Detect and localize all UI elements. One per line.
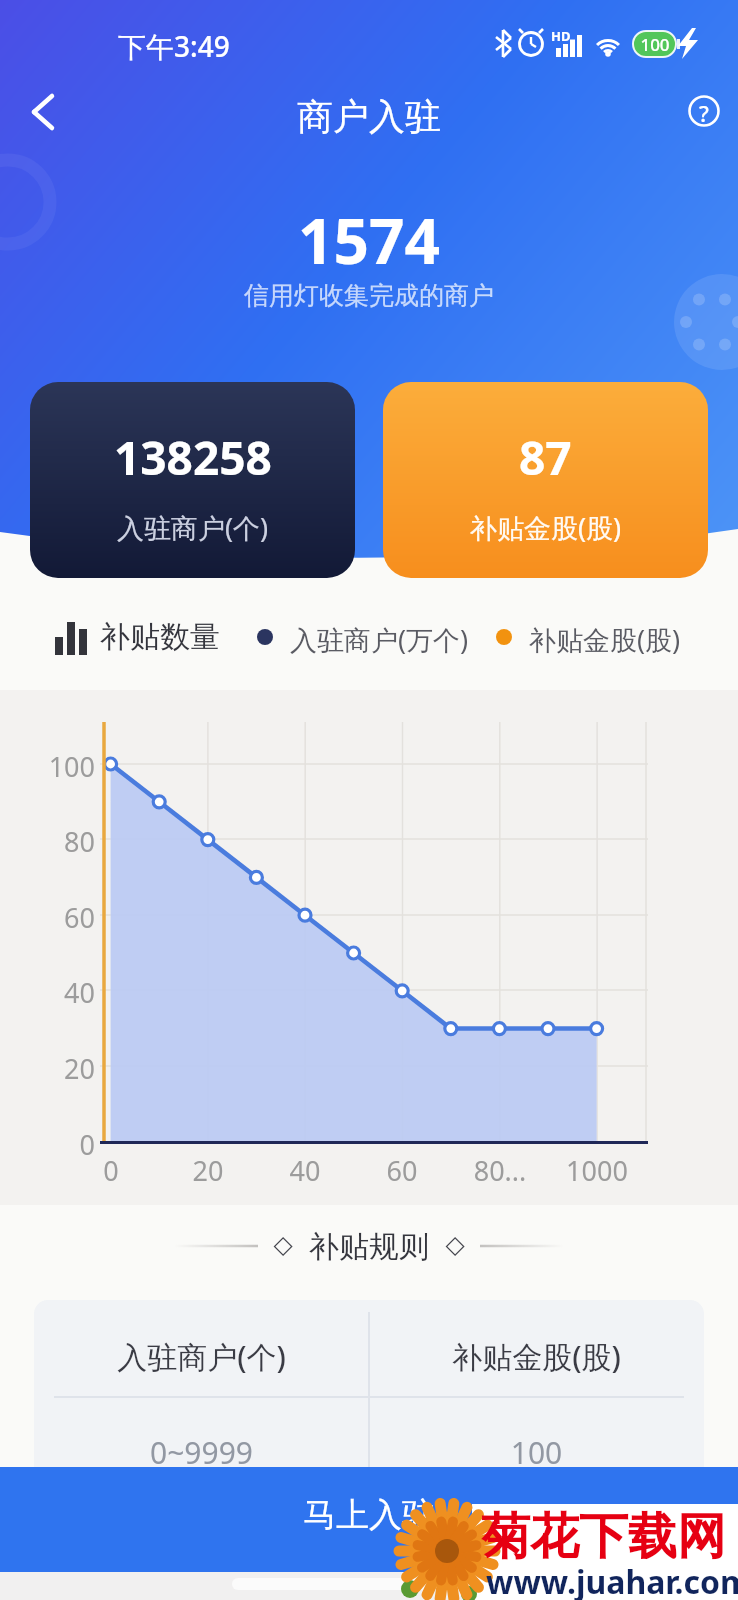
- staticText: 1574: [0, 198, 738, 282]
- staticText: 40: [35, 974, 95, 1011]
- staticText: www.juahar.com: [486, 1560, 738, 1600]
- staticText: 60: [35, 899, 95, 936]
- staticText: 100: [636, 33, 674, 56]
- button[interactable]: 马上入驻: [0, 1467, 738, 1572]
- staticText: 补贴金股(股): [369, 1336, 704, 1377]
- staticText: 商户入驻: [0, 94, 738, 139]
- staticText: 入驻商户(个): [34, 1336, 369, 1377]
- staticText: 补贴规则: [300, 1228, 438, 1266]
- button[interactable]: [680, 87, 728, 135]
- staticText: 40: [265, 1152, 345, 1189]
- staticText: 20: [35, 1050, 95, 1087]
- staticText: 0: [35, 1126, 95, 1163]
- staticText: 80...: [460, 1152, 540, 1189]
- staticText: 入驻商户(个): [117, 509, 269, 546]
- staticText: 补贴数量: [100, 618, 220, 656]
- staticText: 100: [369, 1432, 704, 1473]
- staticText: HD: [551, 27, 571, 45]
- staticText: ◇: [442, 1230, 468, 1259]
- staticText: 菊花下载网: [481, 1506, 726, 1568]
- staticText: 87: [519, 426, 572, 489]
- staticText: 0: [71, 1152, 151, 1189]
- staticText: 入驻商户(万个): [290, 621, 469, 658]
- button[interactable]: 87: [383, 382, 708, 578]
- staticText: 下午3:49: [118, 27, 230, 65]
- button[interactable]: [18, 88, 68, 136]
- staticText: 马上入驻: [303, 1494, 435, 1536]
- staticText: 20: [168, 1152, 248, 1189]
- staticText: 补贴金股(股): [529, 621, 681, 658]
- staticText: 1000: [557, 1152, 637, 1189]
- staticText: 100: [35, 748, 95, 785]
- staticText: ◇: [270, 1230, 296, 1259]
- button[interactable]: 138258: [30, 382, 355, 578]
- staticText: 0~9999: [34, 1432, 369, 1473]
- staticText: 138258: [114, 426, 272, 489]
- staticText: 信用灯收集完成的商户: [0, 280, 738, 311]
- staticText: ?: [689, 98, 719, 128]
- staticText: 60: [362, 1152, 442, 1189]
- staticText: 80: [35, 823, 95, 860]
- staticText: 补贴金股(股): [470, 509, 622, 546]
